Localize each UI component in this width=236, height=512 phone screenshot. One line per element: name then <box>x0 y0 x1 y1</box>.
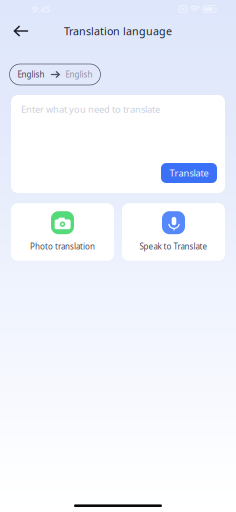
staticText: Speak to Translate <box>139 241 207 252</box>
button[interactable]: English <box>9 64 100 85</box>
staticText: 9:45 <box>32 3 50 15</box>
staticText: Enter what you need to translate <box>21 103 160 115</box>
staticText: Translate <box>169 167 208 179</box>
button[interactable]: Speak to Translate <box>122 203 225 261</box>
button[interactable]: Translate <box>161 163 217 183</box>
staticText: English <box>65 69 92 80</box>
staticText: English <box>17 69 44 80</box>
staticText: Translation language <box>64 24 172 38</box>
button[interactable]: Back <box>7 18 35 44</box>
staticText: Photo translation <box>30 241 95 252</box>
button[interactable]: Photo translation <box>11 203 114 261</box>
